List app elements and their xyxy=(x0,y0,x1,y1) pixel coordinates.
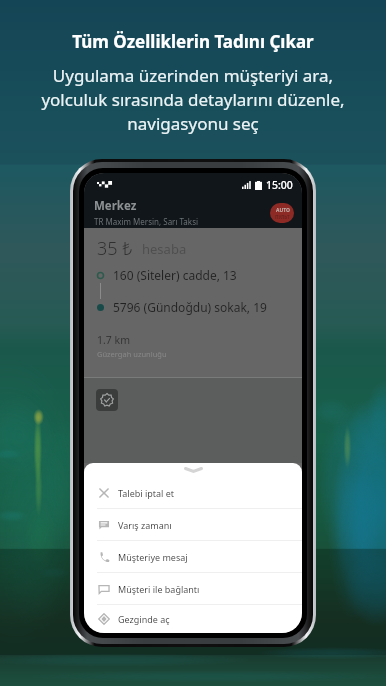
staticText: 5796 (Gündoğdu) sokak, 19 xyxy=(113,299,267,315)
staticText: 1.7 km xyxy=(97,333,130,347)
staticText: 35 ₺ xyxy=(97,236,133,261)
button[interactable]: Talebi iptal et xyxy=(84,477,302,508)
staticText: Müşteriye mesaj xyxy=(118,551,188,563)
button[interactable]: Gezginde aç xyxy=(84,605,302,633)
button[interactable]: Müşteriye mesaj xyxy=(84,541,302,572)
staticText: 15:00 xyxy=(266,178,293,192)
staticText: Tüm Özelliklerin Tadını Çıkar xyxy=(0,30,386,53)
staticText: Varış zamanı xyxy=(118,519,172,531)
button[interactable]: Auto mode xyxy=(270,203,294,223)
staticText: Güzergah uzunluğu xyxy=(97,349,167,359)
button[interactable]: Varış zamanı xyxy=(84,509,302,540)
button[interactable]: Verified badge xyxy=(96,389,118,411)
staticText: Merkez xyxy=(94,198,137,214)
staticText: 160 (Siteler) cadde, 13 xyxy=(113,267,237,283)
staticText: TR Maxim Mersin, Sarı Taksi xyxy=(94,216,199,227)
button[interactable]: Müşteri ile bağlantı xyxy=(84,573,302,604)
staticText: AUTO xyxy=(276,207,290,214)
staticText: ПУЛЬТ xyxy=(275,214,290,220)
staticText: hesaba xyxy=(142,240,187,258)
staticText: Müşteri ile bağlantı xyxy=(118,583,200,595)
staticText: Gezginde aç xyxy=(118,613,170,625)
staticText: Talebi iptal et xyxy=(118,487,175,499)
staticText: Uygulama üzerinden müşteriyi ara, yolcul… xyxy=(0,64,386,135)
